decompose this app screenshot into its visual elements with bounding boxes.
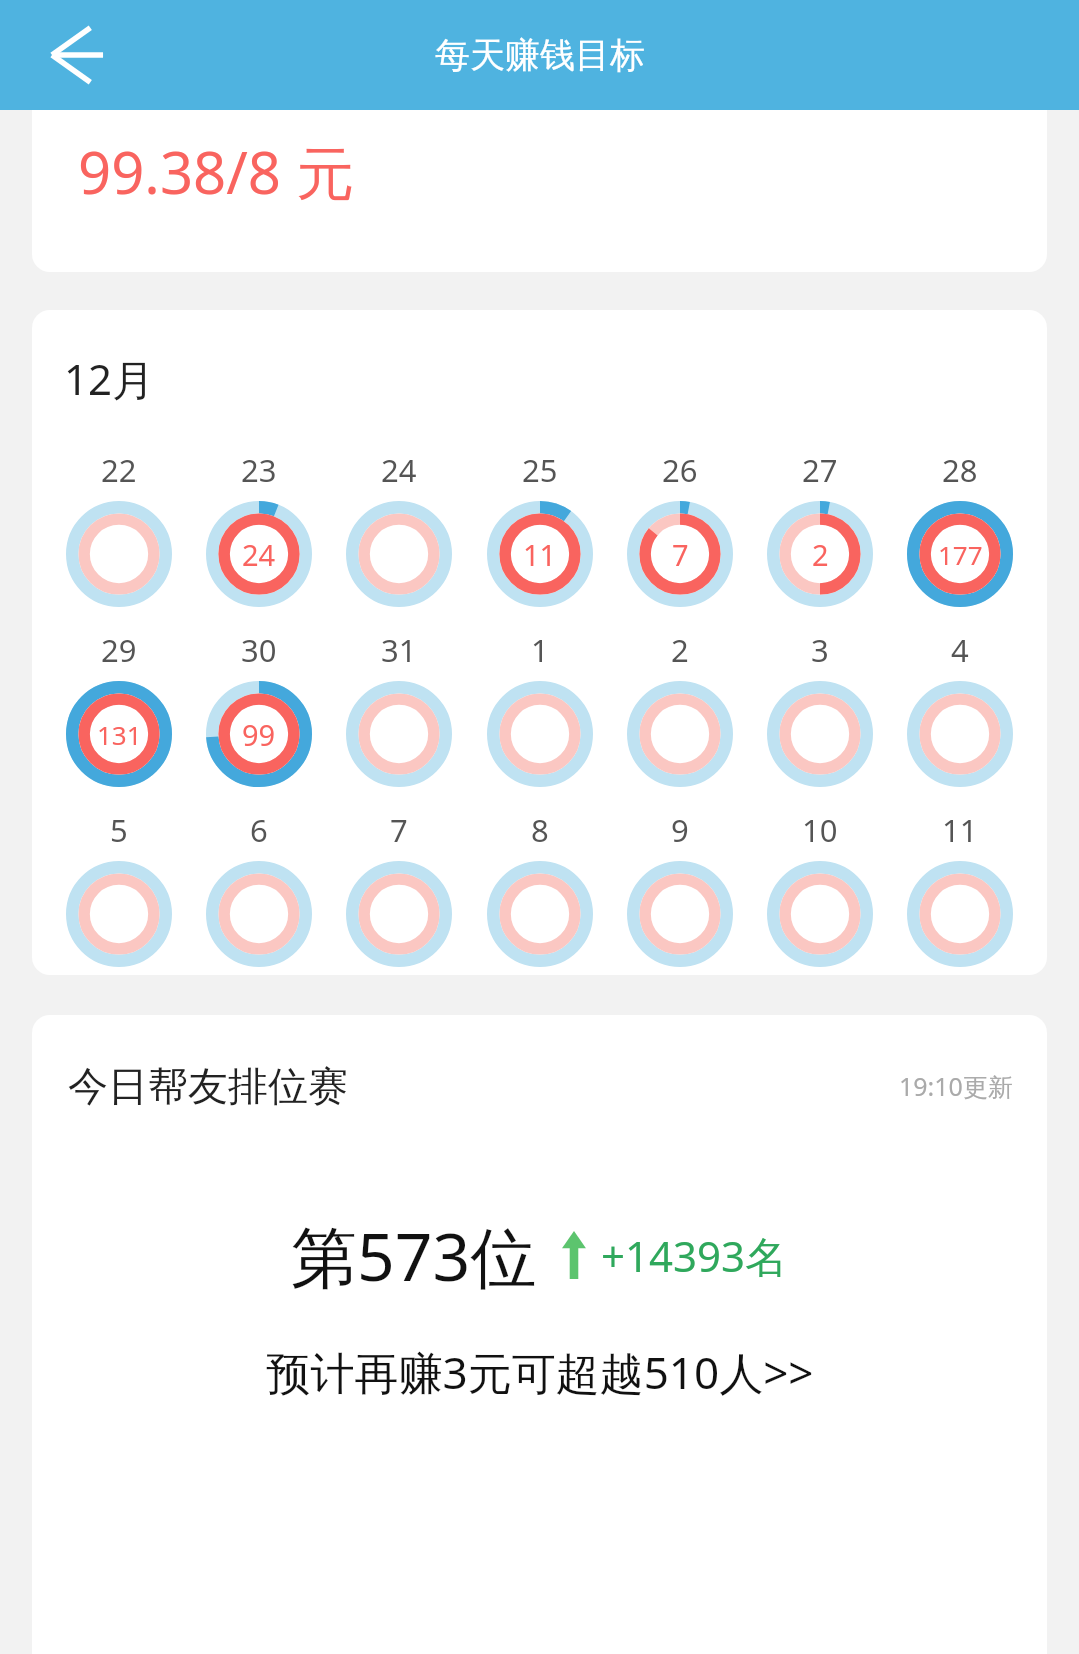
button[interactable]: 24	[336, 449, 462, 607]
staticText: 30	[241, 629, 277, 671]
staticText: 25	[522, 449, 558, 491]
button[interactable]: 1	[477, 629, 603, 787]
button[interactable]: 26	[617, 449, 743, 607]
button[interactable]: 8	[477, 809, 603, 967]
staticText: 10	[802, 809, 838, 851]
staticText: 8	[531, 809, 549, 851]
staticText: 5	[110, 809, 128, 851]
staticText: 9	[671, 809, 689, 851]
button[interactable]: 31	[336, 629, 462, 787]
staticText: 24	[381, 449, 417, 491]
staticText: 99.38/8 元	[78, 132, 355, 211]
staticText: 7	[672, 535, 689, 574]
button[interactable]: Back	[34, 13, 118, 97]
staticText: 2	[812, 535, 829, 574]
staticText: 预计再赚3元可超越510人>>	[266, 1342, 814, 1402]
staticText: 12月	[64, 350, 155, 407]
staticText: 28	[942, 449, 978, 491]
button[interactable]: 7	[336, 809, 462, 967]
button[interactable]: 5	[56, 809, 182, 967]
button[interactable]: 11	[897, 809, 1023, 967]
button[interactable]: 29	[56, 629, 182, 787]
staticText: 177	[938, 537, 983, 572]
staticText: 19:10更新	[899, 1069, 1013, 1103]
staticText: 22	[101, 449, 137, 491]
staticText: 11	[523, 535, 557, 574]
staticText: 99	[242, 715, 276, 754]
button[interactable]: 6	[196, 809, 322, 967]
button[interactable]: 99.38/8 元	[32, 110, 1047, 272]
button[interactable]: 22	[56, 449, 182, 607]
staticText: 第573位	[291, 1210, 537, 1300]
staticText: 3	[811, 629, 829, 671]
staticText: 23	[241, 449, 277, 491]
staticText: 11	[942, 809, 978, 851]
button[interactable]: 3	[757, 629, 883, 787]
button[interactable]: 27	[757, 449, 883, 607]
button[interactable]: 28	[897, 449, 1023, 607]
button[interactable]: 4	[897, 629, 1023, 787]
staticText: 131	[97, 717, 142, 752]
staticText: 24	[242, 535, 276, 574]
staticText: 29	[101, 629, 137, 671]
staticText: 27	[802, 449, 838, 491]
button[interactable]: 2	[617, 629, 743, 787]
staticText: 每天赚钱目标	[435, 33, 645, 77]
button[interactable]: 今日帮友排位赛	[32, 1015, 1047, 1654]
staticText: 31	[381, 629, 417, 671]
staticText: 26	[662, 449, 698, 491]
button[interactable]: 25	[477, 449, 603, 607]
button[interactable]: 10	[757, 809, 883, 967]
staticText: 1	[531, 629, 549, 671]
button[interactable]: 12月	[32, 310, 1047, 975]
staticText: 6	[250, 809, 268, 851]
staticText: 4	[951, 629, 969, 671]
staticText: 2	[671, 629, 689, 671]
button[interactable]: 30	[196, 629, 322, 787]
staticText: +14393名	[601, 1227, 788, 1284]
staticText: 今日帮友排位赛	[68, 1061, 348, 1111]
staticText: 7	[390, 809, 408, 851]
button[interactable]: 9	[617, 809, 743, 967]
button[interactable]: 23	[196, 449, 322, 607]
